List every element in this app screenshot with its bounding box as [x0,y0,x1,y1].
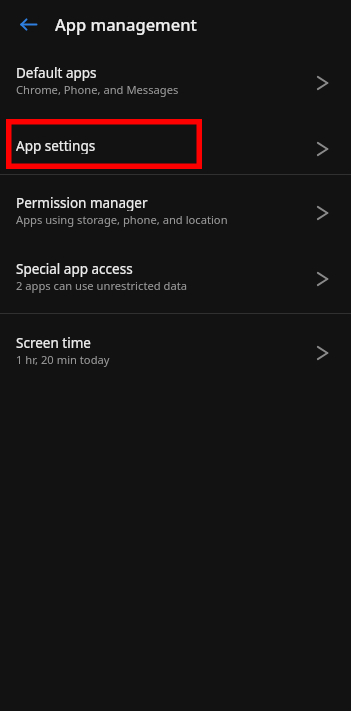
staticText: App management [55,13,197,35]
button[interactable]: Screen time [0,325,351,380]
button[interactable]: App settings [0,118,351,172]
button[interactable]: Back [12,9,44,39]
button[interactable]: Permission manager [0,185,351,240]
staticText: Chrome, Phone, and Messages [16,82,179,97]
staticText: Apps using storage, phone, and location [16,212,228,227]
staticText: 1 hr, 20 min today [16,352,110,367]
staticText: 2 apps can use unrestricted data [16,278,187,293]
button[interactable]: Default apps [0,55,351,110]
staticText: Default apps [16,64,97,81]
staticText: App settings [16,137,96,154]
staticText: Special app access [16,260,133,277]
staticText: Screen time [16,334,91,351]
button[interactable]: Special app access [0,251,351,306]
staticText: Permission manager [16,194,148,211]
